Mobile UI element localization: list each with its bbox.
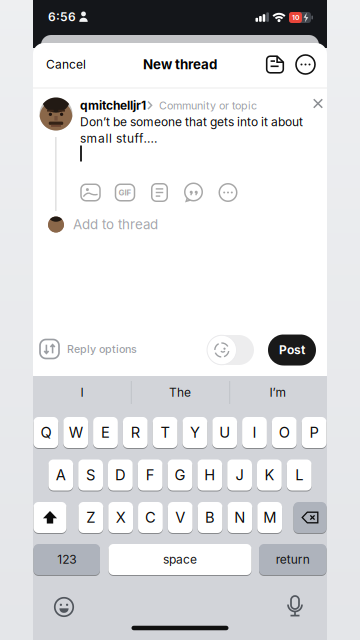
button[interactable]: Drafts [265, 55, 284, 74]
button[interactable]: Community or topic [147, 99, 257, 112]
staticText: Community or topic [159, 99, 257, 112]
button[interactable]: G [168, 459, 192, 491]
staticText: 10 [292, 14, 299, 21]
staticText: T [161, 424, 170, 441]
button[interactable]: A [48, 459, 73, 491]
button[interactable]: S [78, 459, 103, 491]
staticText: The [169, 385, 191, 400]
staticText: D [115, 466, 126, 484]
button[interactable]: X [108, 501, 133, 533]
button[interactable]: K [257, 459, 282, 491]
staticText: I’m [269, 385, 286, 400]
staticText: U [219, 424, 230, 441]
button[interactable]: Add GIF [114, 182, 135, 203]
staticText: O [279, 424, 290, 441]
staticText: small stuff.... [80, 131, 157, 146]
staticText: H [204, 466, 215, 484]
button[interactable]: Reply options [39, 338, 189, 359]
staticText: qmitchelljr1 [80, 98, 146, 113]
button[interactable]: Z [78, 501, 103, 533]
button[interactable]: Add poll [149, 182, 170, 203]
button[interactable]: Emoji [53, 596, 74, 617]
staticText: A [56, 466, 66, 484]
button[interactable]: P [302, 416, 326, 448]
button[interactable]: M [257, 501, 282, 533]
button[interactable]: Add quote [183, 182, 204, 203]
button[interactable]: return [259, 543, 326, 575]
button[interactable]: N [227, 501, 252, 533]
staticText: N [234, 509, 245, 526]
button[interactable]: More options [295, 54, 316, 75]
button[interactable]: V [168, 501, 193, 533]
staticText: B [205, 509, 215, 526]
staticText: V [175, 509, 185, 526]
button[interactable]: C [138, 501, 163, 533]
staticText: L [295, 466, 303, 484]
button[interactable]: 123 [33, 543, 100, 575]
button[interactable]: I [80, 385, 83, 400]
button[interactable]: E [93, 416, 118, 448]
button[interactable]: Shift [33, 501, 66, 533]
button[interactable]: More attachments [217, 182, 238, 203]
button[interactable]: W [63, 416, 88, 448]
staticText: Z [86, 509, 95, 526]
button[interactable]: L [287, 459, 312, 491]
button[interactable]: U [212, 416, 237, 448]
staticText: K [264, 466, 274, 484]
staticText: I [252, 424, 256, 441]
staticText: G [174, 466, 185, 484]
button[interactable]: Dictate [284, 595, 305, 617]
staticText: J [236, 466, 244, 484]
button[interactable]: Y [182, 416, 207, 448]
staticText: Post [279, 343, 305, 357]
staticText: C [145, 509, 156, 526]
staticText: X [116, 509, 126, 526]
button[interactable]: O [272, 416, 297, 448]
staticText: M [263, 509, 276, 526]
button[interactable]: Add to thread [48, 216, 178, 232]
staticText: Don’t be someone that gets into it about [80, 115, 303, 129]
staticText: 123 [57, 552, 76, 567]
staticText: 6:56 [48, 10, 76, 24]
button[interactable]: F [138, 459, 163, 491]
staticText: New thread [143, 57, 217, 72]
button[interactable]: R [123, 416, 148, 448]
button[interactable]: Cancel [46, 57, 86, 72]
button[interactable]: space [108, 543, 251, 575]
button[interactable]: Add photo [80, 182, 101, 203]
button[interactable]: Delete [293, 501, 326, 533]
button[interactable]: Post [268, 334, 316, 365]
button[interactable]: Q [33, 416, 58, 448]
button[interactable]: T [153, 416, 177, 448]
staticText: GIF [118, 188, 131, 197]
staticText: Q [40, 424, 51, 441]
staticText: F [146, 466, 155, 484]
staticText: P [310, 424, 319, 441]
button[interactable]: D [108, 459, 133, 491]
button[interactable]: I’m [269, 385, 286, 400]
staticText: Y [190, 424, 200, 441]
button[interactable]: J [227, 459, 252, 491]
button[interactable]: H [197, 459, 222, 491]
staticText: I [80, 385, 83, 400]
staticText: S [86, 466, 95, 484]
staticText: Cancel [46, 57, 86, 72]
staticText: E [101, 424, 110, 441]
button[interactable]: I [242, 416, 267, 448]
staticText: Add to thread [73, 217, 158, 232]
staticText: return [276, 552, 310, 567]
button[interactable]: Ghost post [204, 334, 257, 366]
staticText: W [69, 424, 83, 441]
button[interactable]: Close [312, 97, 324, 110]
staticText: space [163, 552, 197, 567]
staticText: R [131, 424, 140, 441]
button[interactable]: B [198, 501, 222, 533]
button[interactable]: The [169, 385, 191, 400]
staticText: Reply options [67, 343, 137, 355]
